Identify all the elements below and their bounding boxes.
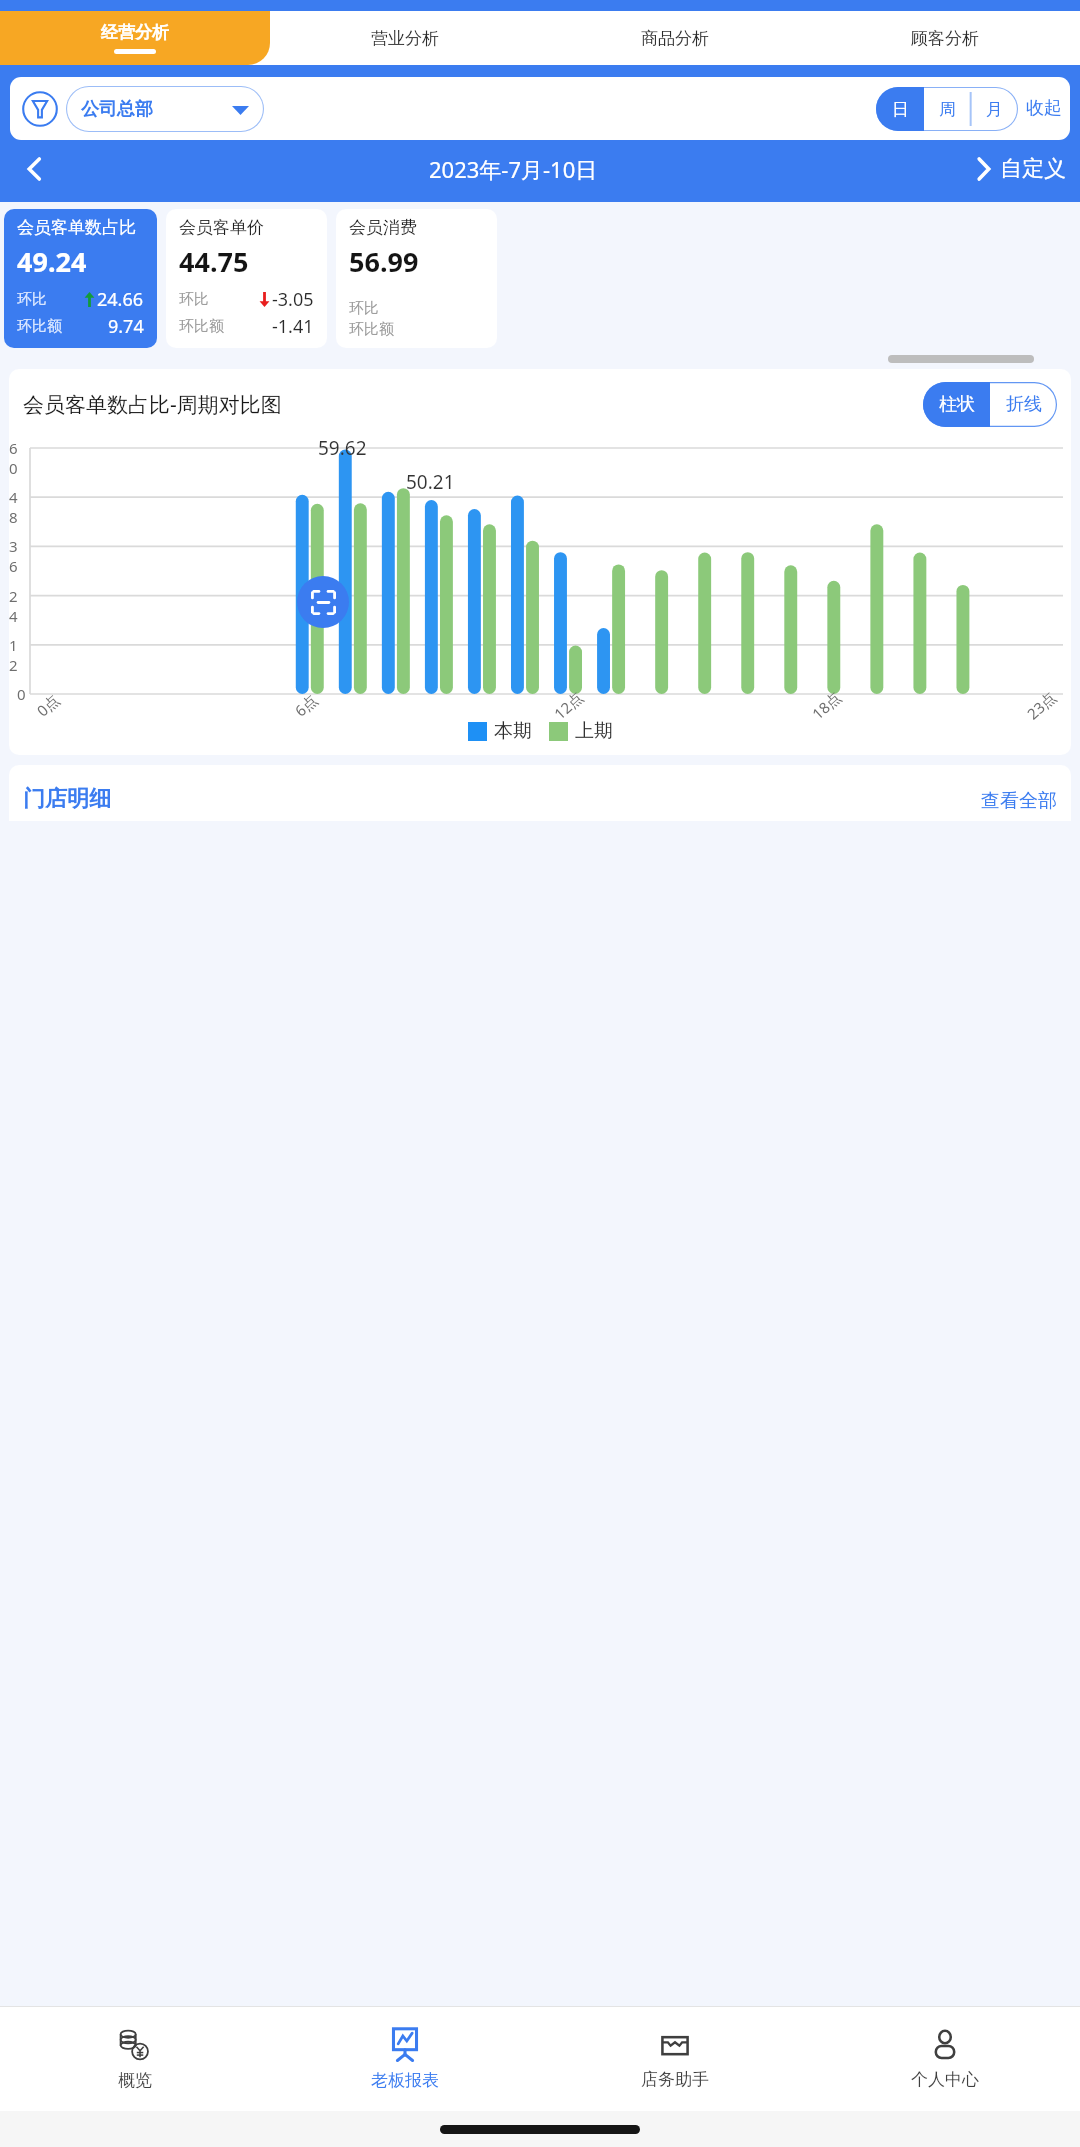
staticText: 44.75 [179,243,249,280]
button[interactable]: 收起 [1026,97,1062,120]
staticText: 会员客单价 [179,217,264,238]
staticText: 会员消费 [349,217,417,238]
button[interactable]: Fullscreen chart [297,576,349,628]
button[interactable]: 经营分析 [0,11,270,65]
staticText: 公司总部 [81,98,153,121]
staticText: 环比额 [179,317,224,336]
button[interactable]: 周 [924,87,971,131]
staticText: 本期 [494,719,532,743]
button[interactable]: 查看全部 [981,789,1057,813]
staticText: 经营分析 [101,22,169,43]
staticText: 月 [986,99,1003,120]
staticText: 24 [9,586,26,626]
button[interactable]: 营业分析 [270,11,540,65]
button[interactable]: 老板报表 [270,2007,540,2111]
staticText: 商品分析 [641,28,709,49]
staticText: 24.66 [97,287,144,312]
staticText: 36 [9,536,26,576]
staticText: 环比额 [17,317,62,336]
button[interactable]: 个人中心 [810,2007,1080,2111]
staticText: 12点 [549,686,587,723]
staticText: 门店明细 [23,785,111,813]
staticText: 49.24 [17,243,87,280]
staticText: 自定义 [1000,155,1066,183]
staticText: 店务助手 [641,2069,709,2090]
staticText: 59.62 [318,435,367,461]
staticText: 会员客单数占比 [17,217,136,238]
button[interactable]: 店务助手 [540,2007,810,2111]
button[interactable]: 会员消费 [336,209,497,348]
staticText: 2023年-7月-10日 [429,154,598,184]
staticText: 收起 [1026,97,1062,120]
staticText: 12 [9,635,26,675]
staticText: -3.05 [272,287,314,312]
staticText: 老板报表 [371,2070,439,2091]
button[interactable]: 折线 [990,382,1057,427]
staticText: 0点 [32,689,64,720]
button[interactable]: 顾客分析 [810,11,1080,65]
staticText: 环比额 [349,320,394,339]
staticText: 概览 [118,2070,152,2091]
staticText: 会员客单数占比-周期对比图 [23,390,282,419]
staticText: 56.99 [349,243,419,280]
staticText: 环比 [349,299,379,318]
staticText: -1.41 [272,314,314,339]
button[interactable]: 月 [971,87,1018,131]
staticText: 6点 [290,689,322,720]
button[interactable]: 商品分析 [540,11,810,65]
button[interactable]: 会员客单价 [166,209,327,348]
button[interactable]: 柱状 [923,382,990,427]
staticText: 环比 [17,290,47,309]
staticText: 环比 [179,290,209,309]
staticText: 营业分析 [371,28,439,49]
staticText: 个人中心 [911,2069,979,2090]
button[interactable]: 日 [876,87,924,131]
staticText: 柱状 [939,393,975,416]
staticText: 48 [9,487,26,527]
staticText: 18点 [807,686,845,723]
button[interactable]: 概览 [0,2007,270,2111]
staticText: 9.74 [108,314,144,339]
button[interactable]: 公司总部 [66,86,264,132]
staticText: 查看全部 [981,789,1057,813]
staticText: 上期 [575,719,613,743]
staticText: 50.21 [406,469,455,495]
button[interactable]: 会员客单数占比 [4,209,157,348]
staticText: 0 [17,684,26,704]
staticText: 周 [939,99,956,120]
button[interactable]: Filter [18,87,62,131]
staticText: 日 [892,99,909,120]
staticText: 折线 [1006,393,1042,416]
staticText: 顾客分析 [911,28,979,49]
button[interactable]: Previous day [14,148,56,190]
staticText: 23点 [1022,686,1060,723]
staticText: 60 [9,438,26,478]
button[interactable]: 自定义 [971,155,1066,183]
